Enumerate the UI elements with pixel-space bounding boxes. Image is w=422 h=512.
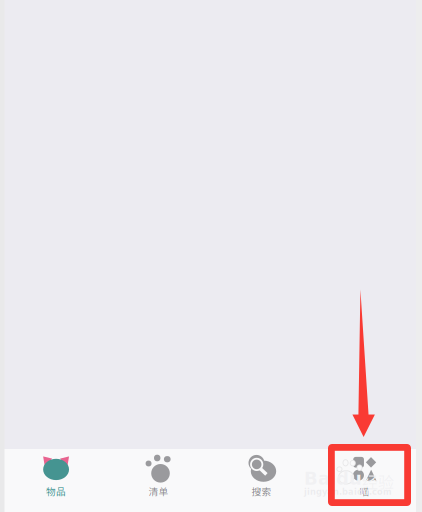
- staticText: jingyan.baidu.com: [304, 487, 392, 497]
- button[interactable]: 搜索: [210, 453, 313, 497]
- staticText: 经验: [362, 470, 394, 493]
- staticText: Baidu: [304, 468, 362, 489]
- button[interactable]: 物品: [4, 453, 107, 497]
- staticText: 喵: [360, 484, 370, 498]
- staticText: 搜索: [252, 484, 272, 498]
- staticText: 物品: [46, 484, 66, 498]
- staticText: 清单: [149, 484, 169, 498]
- button[interactable]: 清单: [107, 453, 210, 497]
- button[interactable]: 喵: [313, 453, 416, 497]
